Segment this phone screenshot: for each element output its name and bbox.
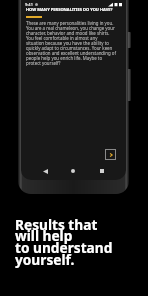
button[interactable]: Home [71,169,83,180]
staticText: Results that will help to understand you… [15,215,113,270]
button[interactable]: Next [105,149,116,160]
staticText: 9:41 [25,2,33,7]
button[interactable]: Back [43,169,55,180]
staticText: HOW MANY PERSONALITIES DO YOU HAVE? [26,7,113,13]
button[interactable]: Results that will help to understand you… [15,215,113,270]
button[interactable]: Recent apps [100,169,112,180]
staticText: These are many personalities living in y… [26,20,116,66]
